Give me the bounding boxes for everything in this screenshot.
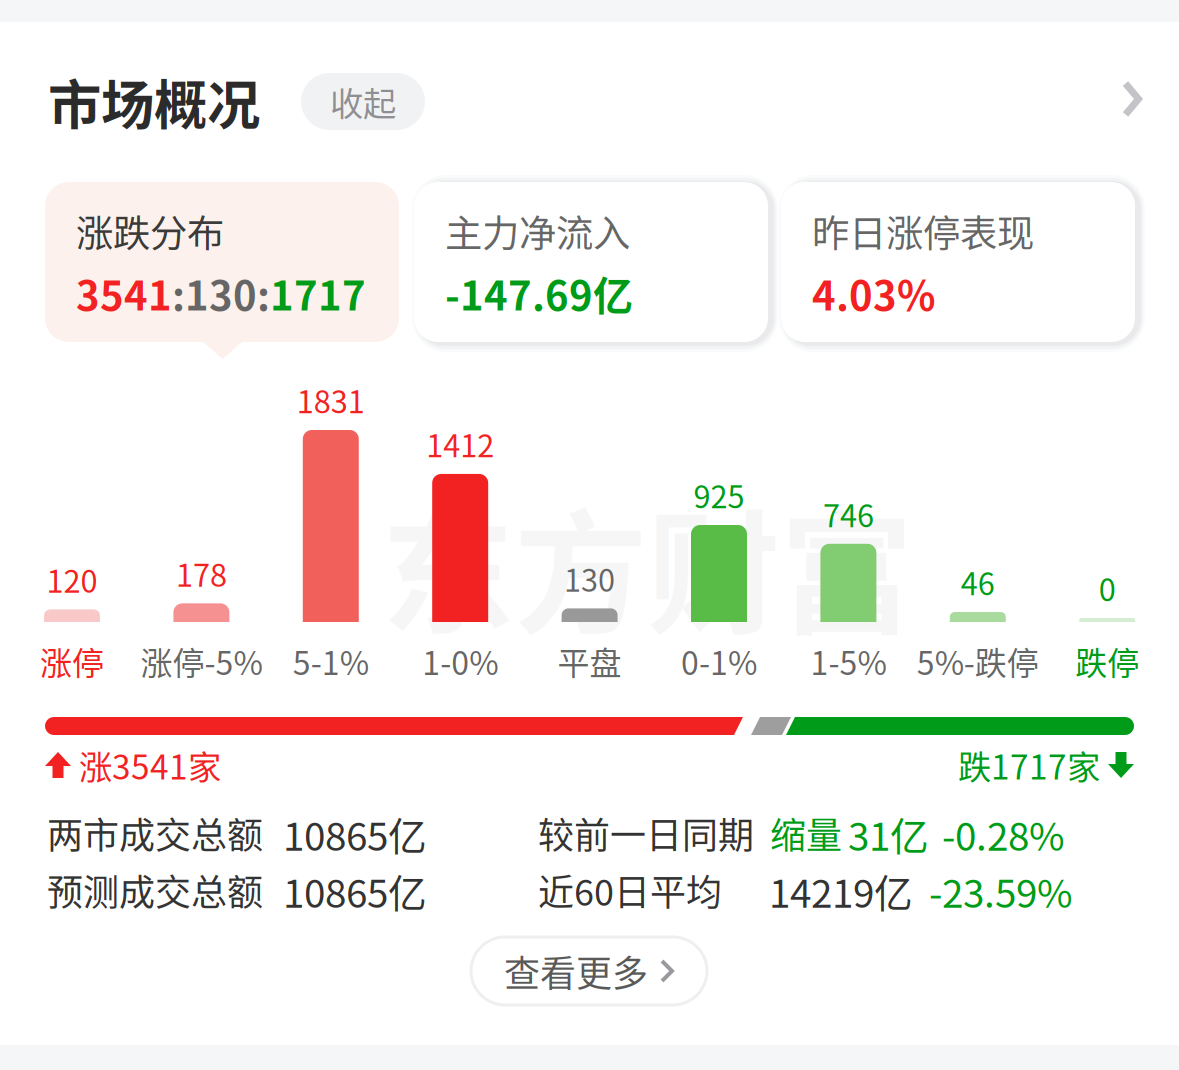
- button[interactable]: 收起: [301, 73, 425, 130]
- staticText: 1831: [297, 378, 365, 422]
- staticText: :: [257, 264, 270, 322]
- staticText: 5-1%: [293, 638, 369, 684]
- staticText: -147.69亿: [445, 264, 633, 322]
- staticText: 31亿: [848, 806, 929, 862]
- staticText: 查看更多: [504, 945, 648, 997]
- staticText: 130: [564, 556, 615, 601]
- staticText: 4.03%: [812, 264, 936, 322]
- staticText: 10865亿: [283, 806, 427, 862]
- staticText: 925: [693, 473, 744, 517]
- staticText: 两市成交总额: [47, 807, 263, 859]
- button[interactable]: 查看更多: [471, 937, 707, 1005]
- button[interactable]: 展开: [1104, 62, 1160, 136]
- staticText: 涨停-5%: [140, 638, 262, 684]
- staticText: 120: [46, 557, 97, 602]
- staticText: 746: [823, 492, 874, 536]
- staticText: 跌停: [1075, 638, 1139, 684]
- staticText: 跌1717家: [958, 741, 1100, 789]
- staticText: 近60日平均: [538, 864, 722, 916]
- staticText: -23.59%: [929, 863, 1073, 919]
- staticText: 1-5%: [810, 638, 886, 684]
- staticText: 0: [1099, 566, 1116, 610]
- staticText: :: [172, 264, 185, 322]
- staticText: 预测成交总额: [47, 864, 263, 916]
- staticText: 收起: [330, 77, 396, 126]
- staticText: 主力净流入: [445, 204, 630, 258]
- staticText: 涨3541家: [79, 741, 221, 789]
- staticText: 10865亿: [283, 863, 427, 919]
- staticText: 1412: [426, 422, 494, 466]
- staticText: 5%-跌停: [917, 638, 1039, 684]
- staticText: 涨跌分布: [76, 204, 224, 258]
- staticText: 市场概况: [48, 63, 260, 140]
- staticText: 3541: [76, 264, 172, 322]
- staticText: 缩量: [770, 807, 842, 859]
- staticText: 46: [961, 560, 995, 604]
- staticText: 平盘: [558, 638, 622, 684]
- staticText: 东方财富: [381, 468, 913, 661]
- staticText: 178: [176, 551, 227, 595]
- staticText: 1-0%: [422, 638, 498, 684]
- staticText: 较前一日同期: [538, 807, 754, 859]
- staticText: 昨日涨停表现: [812, 204, 1034, 258]
- staticText: 14219亿: [769, 863, 913, 919]
- staticText: 0-1%: [681, 638, 757, 684]
- staticText: 涨停: [40, 638, 104, 684]
- staticText: 1717: [270, 264, 366, 322]
- staticText: 130: [185, 264, 257, 322]
- staticText: -0.28%: [942, 806, 1065, 862]
